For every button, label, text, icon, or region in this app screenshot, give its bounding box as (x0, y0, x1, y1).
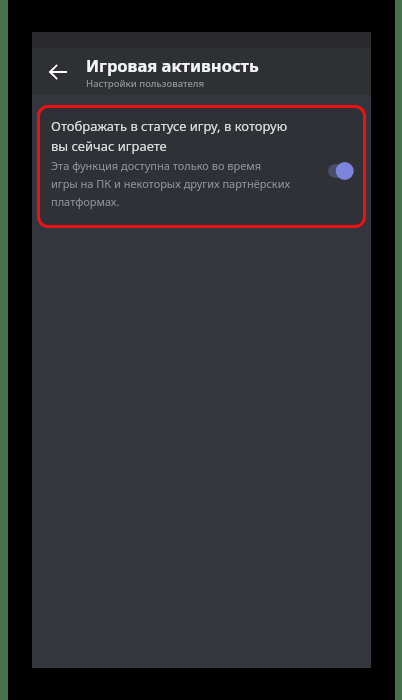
staticText: Отображать в статусе игру, в которую вы … (51, 117, 288, 155)
staticText: Эта функция доступна только во время игр… (51, 158, 291, 209)
button[interactable]: Отображать в статусе игру, в которую вы … (40, 108, 363, 225)
button[interactable]: Отображать игру в статусе (328, 162, 353, 180)
staticText: Игровая активность (86, 54, 259, 76)
button[interactable]: Назад (38, 52, 78, 92)
staticText: Настройки пользователя (86, 77, 205, 90)
